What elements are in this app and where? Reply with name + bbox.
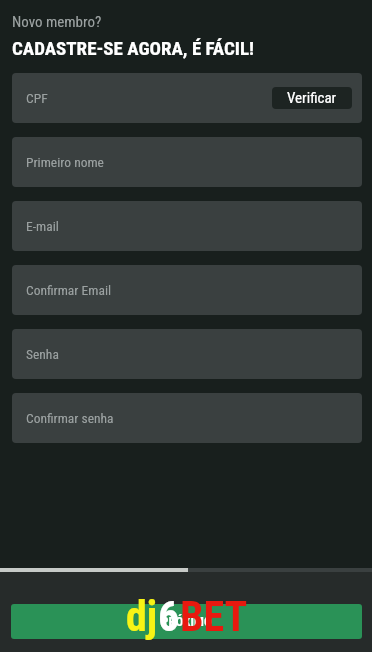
button[interactable]: Confirmar senha — [12, 393, 362, 443]
staticText: BET — [180, 592, 248, 641]
button[interactable]: Verificar — [272, 87, 352, 109]
staticText: E-mail — [26, 218, 59, 234]
button[interactable]: E-mail — [12, 201, 362, 251]
staticText: PRÓXIMO — [161, 614, 212, 629]
staticText: CPF — [26, 90, 48, 106]
staticText: Confirmar Email — [26, 282, 112, 298]
staticText: dj — [126, 592, 158, 641]
staticText: Novo membro? — [12, 13, 102, 31]
button[interactable]: Confirmar Email — [12, 265, 362, 315]
button[interactable]: Senha — [12, 329, 362, 379]
staticText: Verificar — [287, 89, 337, 107]
button[interactable]: PRÓXIMO — [11, 604, 362, 639]
staticText: 6 — [158, 592, 180, 641]
staticText: Confirmar senha — [26, 410, 114, 426]
button[interactable]: Primeiro nome — [12, 137, 362, 187]
staticText: Senha — [26, 346, 59, 362]
staticText: Primeiro nome — [26, 154, 104, 170]
button[interactable]: CPF — [12, 73, 362, 123]
staticText: CADASTRE-SE AGORA, É FÁCIL! — [12, 37, 255, 59]
